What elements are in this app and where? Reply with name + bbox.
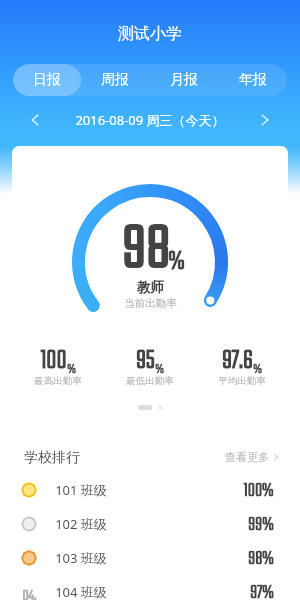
staticText: 95 bbox=[136, 341, 155, 381]
staticText: 97% bbox=[250, 579, 274, 603]
staticText: % bbox=[67, 359, 76, 380]
staticText: 日报 bbox=[33, 71, 61, 89]
staticText: 97.6 bbox=[222, 341, 253, 381]
button[interactable]: Next day bbox=[255, 110, 275, 130]
staticText: 2016-08-09 周三（今天） bbox=[75, 111, 225, 129]
button[interactable]: Previous day bbox=[25, 110, 45, 130]
staticText: % bbox=[253, 359, 262, 380]
staticText: 最高出勤率 bbox=[34, 375, 82, 387]
staticText: 月报 bbox=[170, 71, 198, 89]
button[interactable]: 周报 bbox=[81, 64, 149, 96]
button[interactable]: 查看更多 bbox=[225, 450, 280, 464]
button[interactable]: 日报 bbox=[13, 64, 81, 96]
staticText: 98% bbox=[248, 545, 274, 574]
staticText: 100% bbox=[243, 477, 274, 506]
staticText: 学校排行 bbox=[24, 449, 80, 467]
button[interactable]: 04. bbox=[0, 575, 300, 603]
staticText: % bbox=[155, 359, 164, 380]
staticText: 当前出勤率 bbox=[124, 297, 177, 310]
staticText: 99% bbox=[248, 511, 274, 540]
staticText: 102 班级 bbox=[55, 515, 107, 533]
staticText: 最低出勤率 bbox=[126, 375, 174, 387]
button[interactable]: 月报 bbox=[149, 64, 218, 96]
staticText: 平均出勤率 bbox=[218, 375, 266, 387]
staticText: 周报 bbox=[101, 71, 129, 89]
button[interactable]: 101 班级 bbox=[0, 473, 300, 507]
staticText: 测试小学 bbox=[118, 24, 182, 44]
staticText: 101 班级 bbox=[55, 481, 107, 499]
staticText: 年报 bbox=[239, 71, 267, 89]
staticText: 100 bbox=[40, 341, 67, 381]
staticText: 教师 bbox=[137, 279, 164, 296]
staticText: 98 bbox=[122, 202, 171, 299]
staticText: 查看更多 bbox=[225, 450, 269, 464]
staticText: 104 班级 bbox=[55, 583, 107, 601]
button[interactable]: 103 班级 bbox=[0, 541, 300, 575]
staticText: 04. bbox=[22, 584, 37, 600]
button[interactable]: 102 班级 bbox=[0, 507, 300, 541]
staticText: 103 班级 bbox=[55, 549, 107, 567]
button[interactable]: 年报 bbox=[218, 64, 287, 96]
staticText: % bbox=[168, 242, 185, 282]
